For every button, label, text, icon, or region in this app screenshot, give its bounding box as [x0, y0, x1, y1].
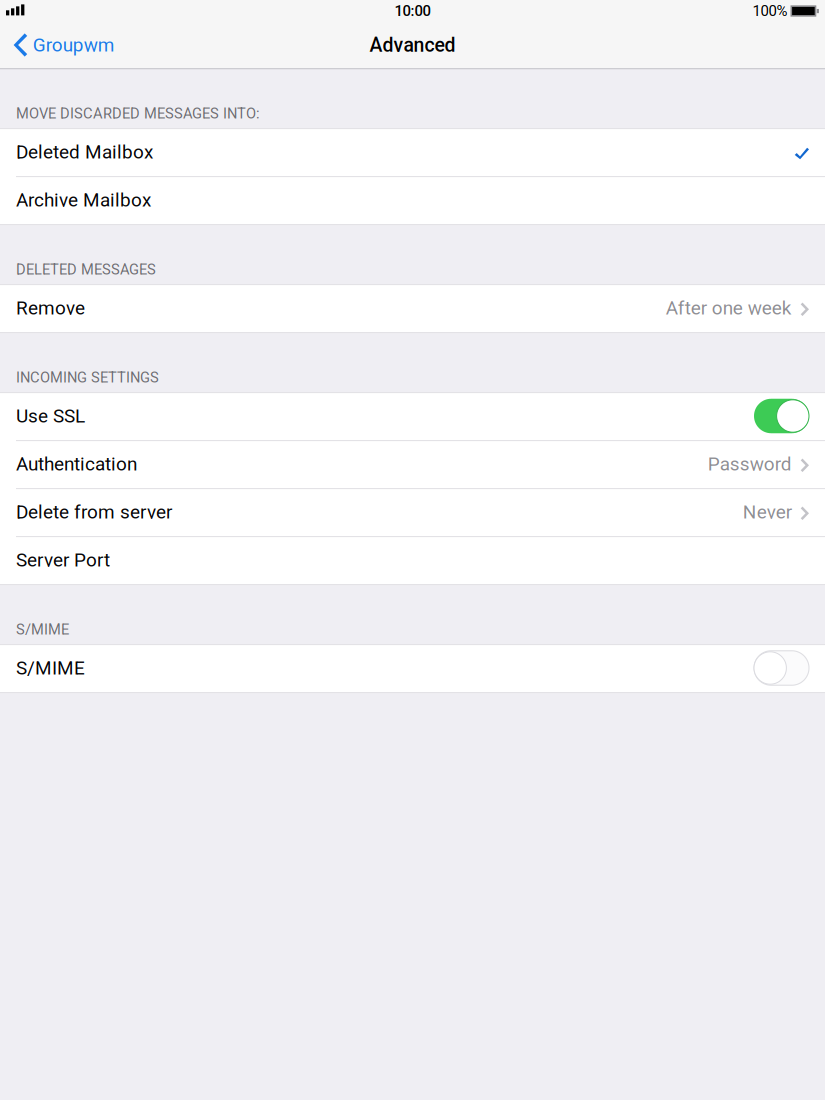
button[interactable]: Archive Mailbox	[0, 176, 825, 224]
button[interactable]: Delete from server	[0, 488, 825, 536]
button[interactable]: S/MIME	[754, 651, 809, 685]
staticText: S/MIME	[16, 657, 85, 679]
staticText: 100%	[752, 2, 787, 20]
staticText: Groupwm	[33, 34, 115, 56]
staticText: Remove	[16, 297, 85, 319]
staticText: Authentication	[16, 453, 137, 475]
button[interactable]: Use SSL	[754, 399, 809, 433]
staticText: INCOMING SETTINGS	[16, 369, 159, 386]
staticText: S/MIME	[16, 621, 69, 638]
staticText: Never	[743, 501, 792, 523]
staticText: Password	[708, 453, 792, 475]
staticText: 10:00	[394, 2, 430, 20]
button[interactable]: Server Port	[0, 536, 825, 584]
staticText: After one week	[666, 297, 792, 319]
button[interactable]: Remove	[0, 284, 825, 332]
staticText: Delete from server	[16, 501, 172, 523]
staticText: Advanced	[369, 34, 455, 56]
button[interactable]: Authentication	[0, 440, 825, 488]
staticText: Archive Mailbox	[16, 189, 151, 211]
staticText: Deleted Mailbox	[16, 141, 153, 163]
staticText: Use SSL	[16, 405, 85, 427]
button[interactable]: Deleted Mailbox	[0, 128, 825, 176]
staticText: DELETED MESSAGES	[16, 261, 156, 278]
button[interactable]: Groupwm	[0, 22, 125, 68]
staticText: MOVE DISCARDED MESSAGES INTO:	[16, 105, 260, 122]
staticText: Server Port	[16, 549, 110, 571]
